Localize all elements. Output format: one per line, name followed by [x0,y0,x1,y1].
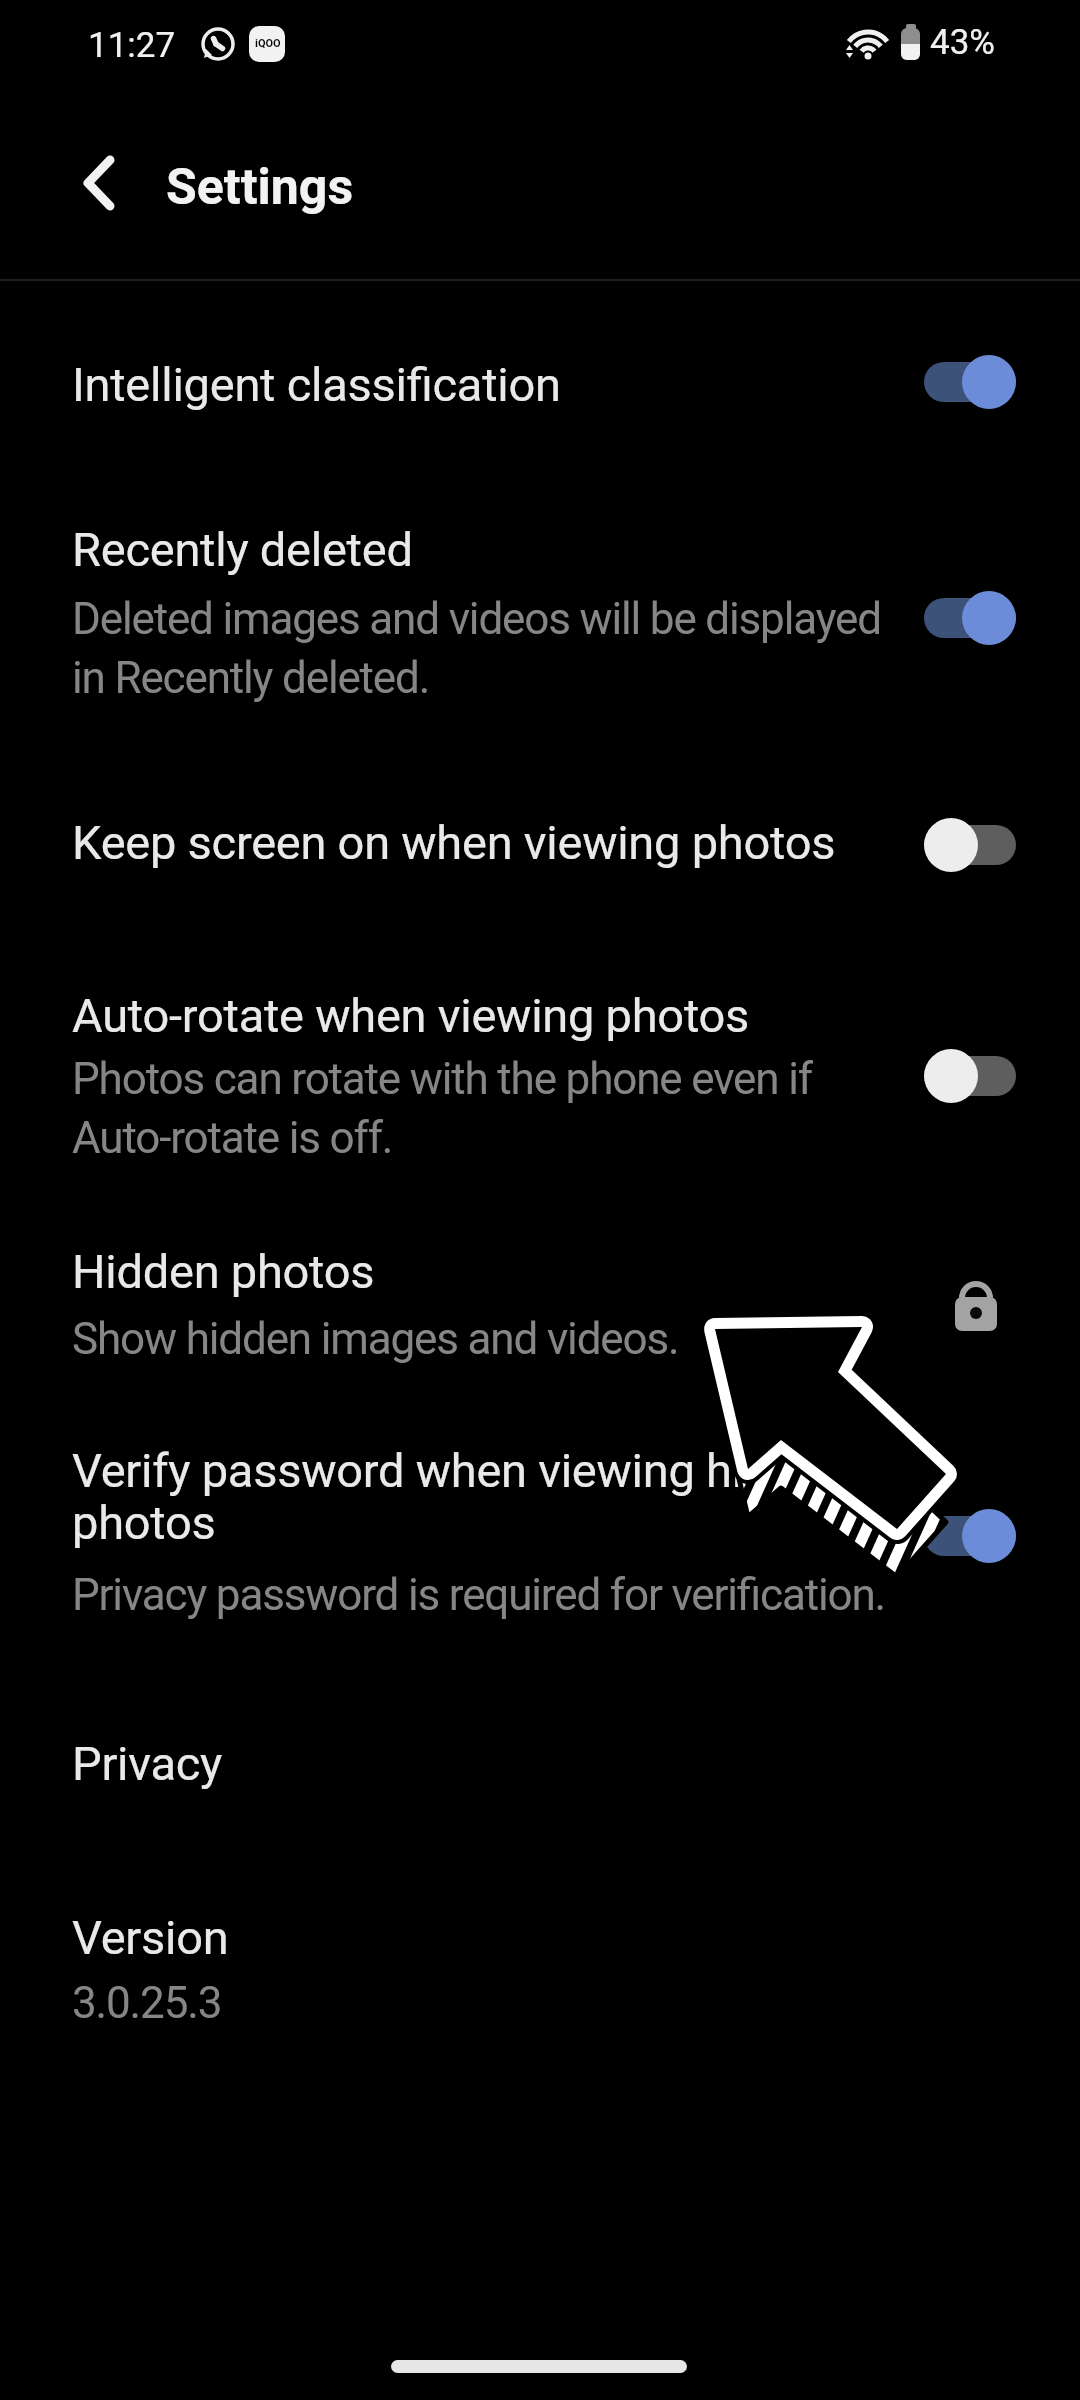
button[interactable] [920,354,1020,410]
staticText: Settings [166,158,354,217]
button[interactable] [72,150,122,216]
button[interactable] [920,817,1020,873]
button[interactable] [0,1415,1080,1650]
staticText: Version [72,1910,229,1965]
staticText: 43% [930,22,995,63]
staticText: Photos can rotate with the phone even if [72,1053,812,1105]
staticText: Show hidden images and videos. [72,1313,679,1365]
staticText: Intelligent classification [72,357,561,412]
button[interactable] [0,1880,1080,2050]
staticText: photos [72,1495,216,1550]
staticText: Auto-rotate when viewing photos [72,988,750,1043]
button[interactable] [0,790,1080,902]
button[interactable] [920,590,1020,646]
staticText: iQOO [255,37,281,50]
button[interactable] [920,1048,1020,1104]
staticText: Hidden photos [72,1244,375,1299]
staticText: Recently deleted [72,522,413,577]
staticText: Deleted images and videos will be displa… [72,593,881,645]
staticText: Keep screen on when viewing photos [72,815,836,870]
staticText: 11:27 [88,25,176,66]
staticText: Privacy [72,1736,223,1791]
button[interactable] [0,495,1080,725]
button[interactable] [0,1712,1080,1817]
button[interactable] [0,330,1080,445]
staticText: 3.0.25.3 [72,1977,222,2029]
staticText: Privacy password is required for verific… [72,1569,886,1621]
staticText: Auto-rotate is off. [72,1112,393,1164]
button[interactable] [920,1508,1020,1564]
button[interactable] [0,958,1080,1188]
button[interactable] [0,1220,1080,1390]
staticText: in Recently deleted. [72,652,430,704]
staticText: Verify password when viewing hidden [72,1443,846,1498]
